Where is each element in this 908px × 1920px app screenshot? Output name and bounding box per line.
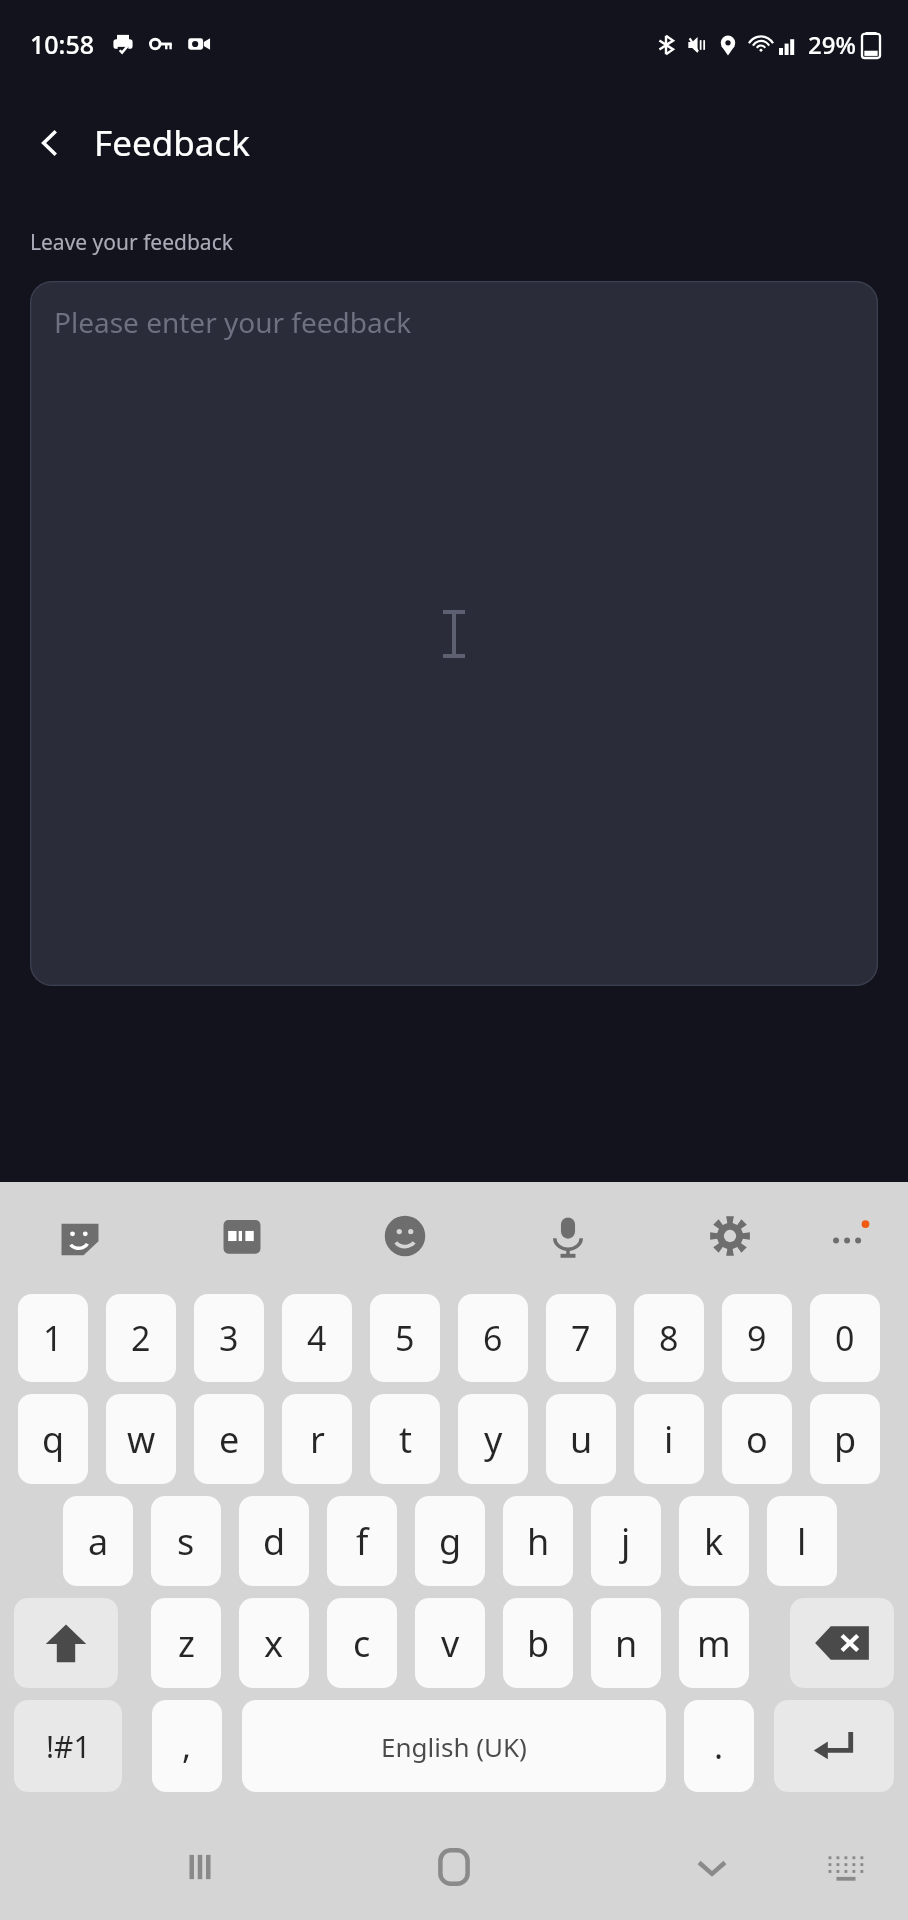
button[interactable]: u: [546, 1394, 616, 1484]
staticText: Feedback: [94, 119, 250, 167]
button[interactable]: 6: [458, 1294, 528, 1382]
button[interactable]: 4: [282, 1294, 352, 1382]
button[interactable]: g: [415, 1496, 485, 1586]
button[interactable]: o: [722, 1394, 792, 1484]
button[interactable]: Recent apps: [160, 1814, 240, 1920]
staticText: 10:58: [30, 27, 95, 61]
staticText: a: [88, 1517, 109, 1566]
button[interactable]: z: [151, 1598, 221, 1688]
staticText: 3: [219, 1315, 239, 1361]
button[interactable]: Voice input: [528, 1196, 608, 1276]
button[interactable]: 7: [546, 1294, 616, 1382]
staticText: i: [664, 1415, 674, 1464]
button[interactable]: Backspace: [790, 1598, 894, 1688]
staticText: f: [356, 1517, 369, 1566]
button[interactable]: a: [63, 1496, 133, 1586]
staticText: 1: [43, 1315, 63, 1361]
button[interactable]: Emoji: [365, 1196, 445, 1276]
button[interactable]: Shift: [14, 1598, 118, 1688]
button[interactable]: Home: [414, 1814, 494, 1920]
button[interactable]: 3: [194, 1294, 264, 1382]
button[interactable]: Back: [24, 117, 76, 169]
button[interactable]: t: [370, 1394, 440, 1484]
button[interactable]: b: [503, 1598, 573, 1688]
button[interactable]: i: [634, 1394, 704, 1484]
button[interactable]: 2: [106, 1294, 176, 1382]
button[interactable]: p: [810, 1394, 880, 1484]
staticText: t: [399, 1415, 412, 1464]
button[interactable]: Enter: [774, 1700, 894, 1792]
staticText: d: [263, 1517, 286, 1566]
staticText: English (UK): [381, 1729, 527, 1764]
staticText: u: [570, 1415, 593, 1464]
button[interactable]: m: [679, 1598, 749, 1688]
button[interactable]: c: [327, 1598, 397, 1688]
staticText: h: [527, 1517, 550, 1566]
button[interactable]: f: [327, 1496, 397, 1586]
staticText: e: [219, 1415, 240, 1464]
staticText: j: [621, 1517, 631, 1566]
staticText: x: [264, 1619, 284, 1668]
staticText: 2: [131, 1315, 151, 1361]
staticText: 9: [747, 1315, 767, 1361]
staticText: 6: [483, 1315, 503, 1361]
staticText: !#1: [46, 1726, 91, 1767]
staticText: b: [527, 1619, 550, 1668]
staticText: s: [177, 1517, 195, 1566]
staticText: c: [353, 1619, 371, 1668]
button[interactable]: English (UK): [242, 1700, 666, 1792]
button[interactable]: Stickers: [40, 1196, 120, 1276]
staticText: Leave your feedback: [30, 228, 233, 257]
button[interactable]: Settings: [690, 1196, 770, 1276]
button[interactable]: !#1: [14, 1700, 122, 1792]
staticText: 7: [571, 1315, 591, 1361]
button[interactable]: 8: [634, 1294, 704, 1382]
button[interactable]: e: [194, 1394, 264, 1484]
button[interactable]: r: [282, 1394, 352, 1484]
staticText: o: [746, 1415, 768, 1464]
staticText: ,: [182, 1723, 192, 1769]
staticText: .: [714, 1723, 724, 1769]
button[interactable]: l: [767, 1496, 837, 1586]
button[interactable]: 5: [370, 1294, 440, 1382]
button[interactable]: .: [684, 1700, 754, 1792]
button[interactable]: x: [239, 1598, 309, 1688]
button[interactable]: n: [591, 1598, 661, 1688]
staticText: l: [797, 1517, 807, 1566]
button[interactable]: j: [591, 1496, 661, 1586]
staticText: r: [310, 1415, 325, 1464]
staticText: p: [834, 1415, 857, 1464]
button[interactable]: 1: [18, 1294, 88, 1382]
button[interactable]: q: [18, 1394, 88, 1484]
button[interactable]: Switch keyboard: [806, 1814, 886, 1920]
staticText: 4: [307, 1315, 327, 1361]
button[interactable]: 0: [810, 1294, 880, 1382]
button[interactable]: GIF: [202, 1196, 282, 1276]
staticText: v: [441, 1619, 460, 1668]
staticText: n: [615, 1619, 638, 1668]
staticText: y: [484, 1415, 503, 1464]
staticText: 29%: [808, 28, 856, 61]
button[interactable]: v: [415, 1598, 485, 1688]
staticText: 8: [659, 1315, 679, 1361]
button[interactable]: 9: [722, 1294, 792, 1382]
button[interactable]: d: [239, 1496, 309, 1586]
button[interactable]: k: [679, 1496, 749, 1586]
staticText: 5: [395, 1315, 415, 1361]
staticText: 0: [835, 1315, 855, 1361]
staticText: q: [42, 1415, 65, 1464]
button[interactable]: h: [503, 1496, 573, 1586]
staticText: w: [127, 1415, 156, 1464]
button[interactable]: s: [151, 1496, 221, 1586]
button[interactable]: w: [106, 1394, 176, 1484]
staticText: k: [704, 1517, 724, 1566]
staticText: Please enter your feedback: [54, 303, 412, 341]
button[interactable]: y: [458, 1394, 528, 1484]
staticText: m: [697, 1619, 731, 1668]
button[interactable]: ,: [152, 1700, 222, 1792]
button[interactable]: More options: [808, 1196, 888, 1276]
staticText: z: [178, 1619, 195, 1668]
button[interactable]: Hide keyboard: [672, 1814, 752, 1920]
staticText: g: [439, 1517, 462, 1566]
button[interactable]: Please enter your feedback: [30, 281, 878, 986]
